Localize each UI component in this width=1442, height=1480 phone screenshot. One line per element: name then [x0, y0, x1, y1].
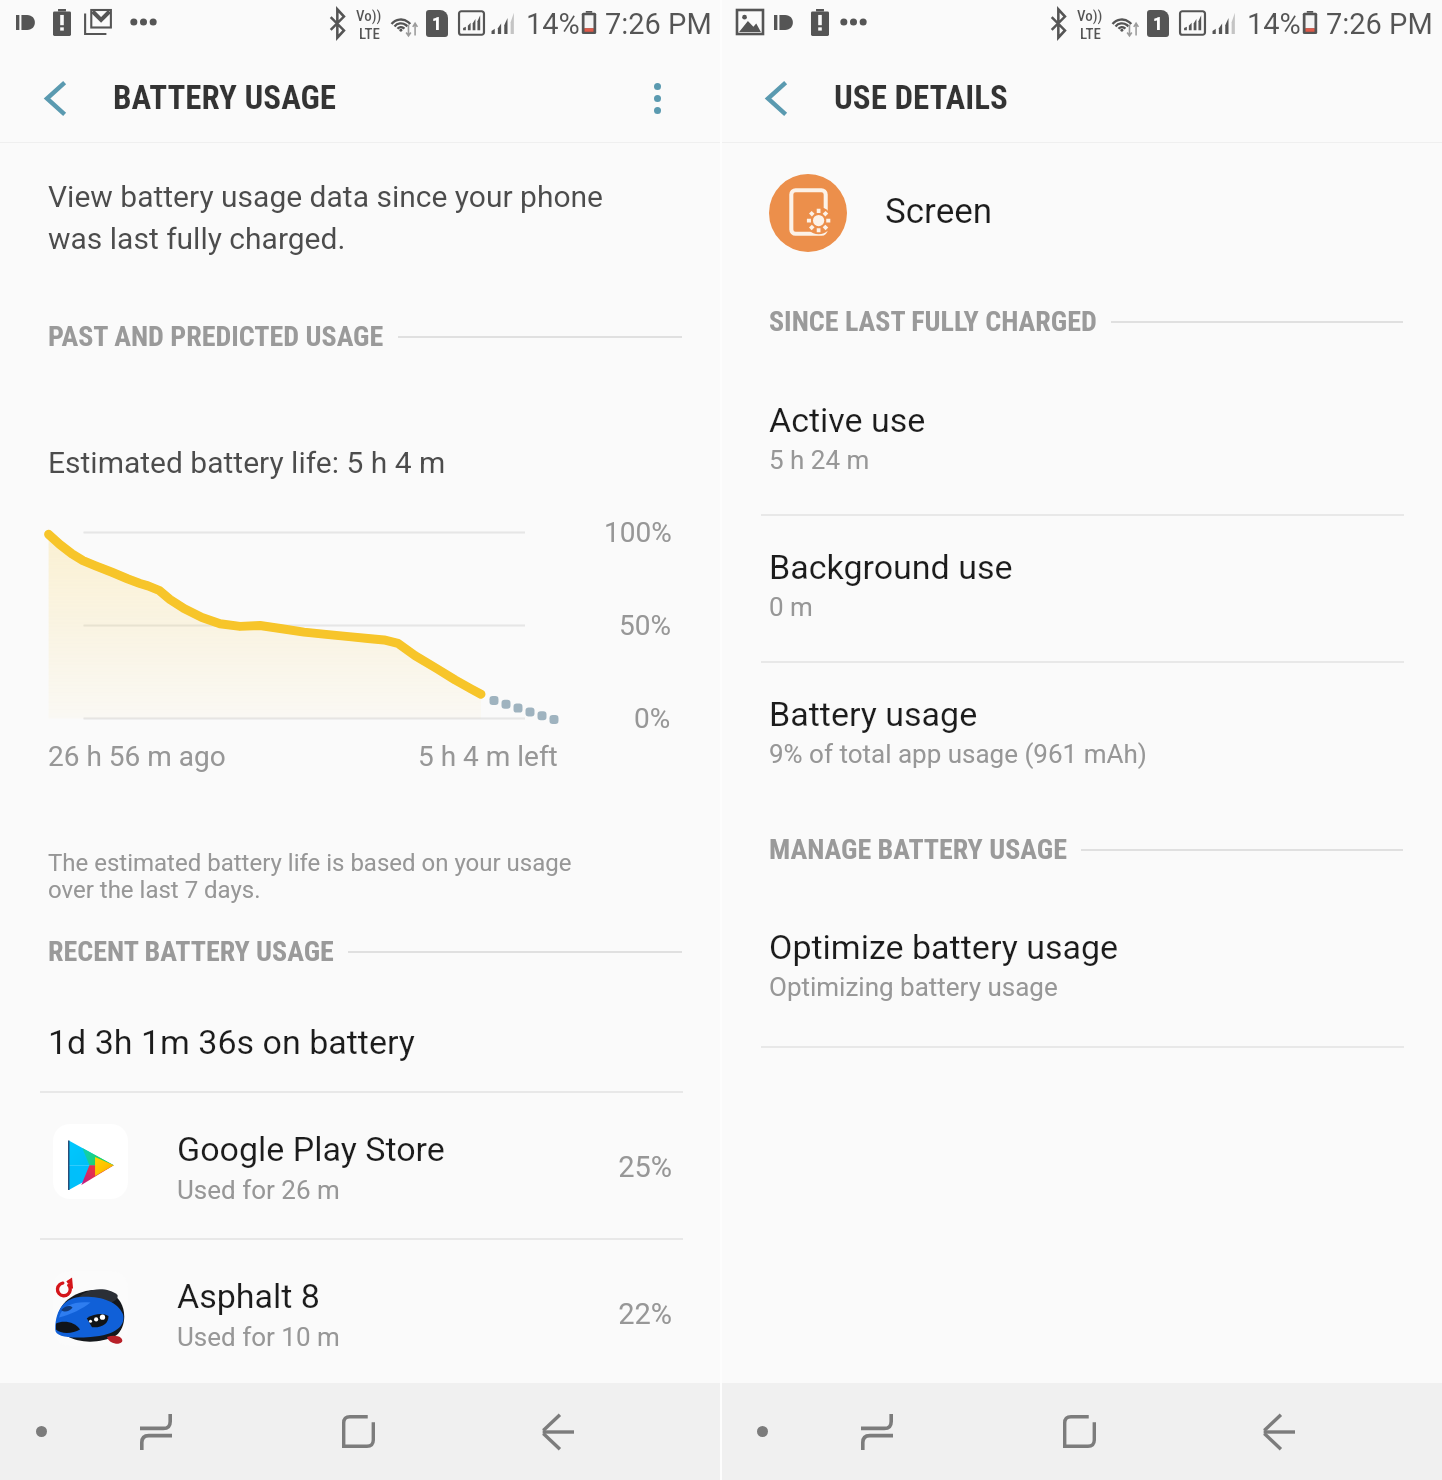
- staticText: Background use: [769, 547, 1013, 587]
- staticText: 9% of total app usage (961 mAh): [769, 739, 1147, 769]
- staticText: 7:26 PM: [1326, 7, 1433, 41]
- button[interactable]: Back: [520, 1383, 596, 1480]
- button[interactable]: Back: [738, 60, 814, 136]
- button[interactable]: Optimize battery usage: [721, 903, 1442, 1026]
- staticText: 26 h 56 m ago: [48, 740, 226, 773]
- staticText: 1: [432, 12, 442, 34]
- staticText: 1d 3h 1m 36s on battery: [48, 1022, 415, 1062]
- button[interactable]: Home: [320, 1383, 396, 1480]
- staticText: LTE: [359, 25, 380, 43]
- staticText: 100%: [604, 516, 672, 549]
- button[interactable]: Screen: [721, 172, 1442, 254]
- staticText: LTE: [1080, 25, 1101, 43]
- button[interactable]: Battery usage: [721, 670, 1442, 793]
- button[interactable]: Recent apps: [118, 1383, 194, 1480]
- staticText: Estimated battery life: 5 h 4 m: [48, 445, 446, 480]
- button[interactable]: Back: [17, 60, 93, 136]
- staticText: RECENT BATTERY USAGE: [48, 935, 334, 968]
- staticText: 5 h 24 m: [769, 445, 870, 475]
- button[interactable]: Home: [1041, 1383, 1117, 1480]
- button[interactable]: Google Play Store: [0, 1092, 721, 1238]
- staticText: Optimizing battery usage: [769, 972, 1058, 1002]
- staticText: 50%: [619, 609, 671, 642]
- button[interactable]: Back: [1241, 1383, 1317, 1480]
- staticText: 5 h 4 m left: [418, 740, 558, 773]
- staticText: Used for 10 m: [177, 1322, 340, 1352]
- staticText: PAST AND PREDICTED USAGE: [48, 320, 384, 353]
- button[interactable]: More options: [619, 60, 695, 136]
- staticText: 14%: [1247, 7, 1301, 41]
- staticText: 14%: [526, 7, 580, 41]
- staticText: 7:26 PM: [605, 7, 712, 41]
- button[interactable]: Recent apps: [839, 1383, 915, 1480]
- staticText: Battery usage: [769, 694, 978, 734]
- staticText: Active use: [769, 400, 926, 440]
- staticText: View battery usage data since your phone…: [48, 179, 603, 257]
- staticText: 22%: [588, 1297, 672, 1331]
- staticText: Vo)): [1077, 7, 1103, 25]
- staticText: BATTERY USAGE: [113, 78, 337, 117]
- staticText: Asphalt 8: [177, 1276, 320, 1316]
- staticText: Used for 26 m: [177, 1175, 340, 1205]
- staticText: The estimated battery life is based on y…: [48, 849, 572, 904]
- staticText: USE DETAILS: [834, 78, 1008, 117]
- staticText: 1: [1153, 12, 1163, 34]
- staticText: 0%: [634, 702, 671, 735]
- button[interactable]: Background use: [721, 523, 1442, 646]
- staticText: SINCE LAST FULLY CHARGED: [769, 305, 1097, 338]
- staticText: MANAGE BATTERY USAGE: [769, 833, 1067, 866]
- staticText: Optimize battery usage: [769, 927, 1119, 967]
- button[interactable]: Active use: [721, 376, 1442, 499]
- staticText: 25%: [588, 1150, 672, 1184]
- staticText: Vo)): [356, 7, 382, 25]
- button[interactable]: Asphalt 8: [0, 1239, 721, 1385]
- staticText: Screen: [885, 191, 993, 232]
- staticText: 0 m: [769, 592, 813, 622]
- staticText: Google Play Store: [177, 1129, 445, 1169]
